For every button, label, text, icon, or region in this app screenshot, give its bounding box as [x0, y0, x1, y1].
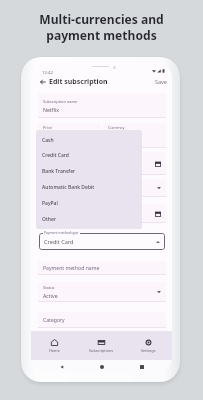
staticText: Edit subscription [49, 77, 108, 87]
staticText: Currency [108, 125, 125, 130]
button[interactable]: Automatic Bank Debit [36, 179, 142, 195]
button[interactable]: Category [38, 312, 166, 328]
button[interactable]: Credit Card [39, 233, 165, 250]
staticText: Multi-currencies and payment methods [39, 11, 164, 43]
button[interactable]: Currency [103, 123, 166, 148]
button[interactable]: PayPal [36, 195, 142, 211]
staticText: Payment method name [43, 265, 100, 272]
staticText: Payment method type [44, 230, 79, 234]
staticText: 12:42 [42, 69, 53, 75]
staticText: Credit Card [44, 238, 74, 246]
button[interactable]: Home [31, 337, 78, 355]
button[interactable]: Subscriptions [78, 337, 125, 355]
button[interactable]: Back [57, 362, 66, 371]
staticText: Status [43, 285, 55, 290]
button[interactable]: Subscription name [38, 93, 166, 118]
staticText: Settings [141, 348, 156, 353]
staticText: PayPal [42, 200, 58, 207]
button[interactable]: Payment method name [38, 261, 166, 275]
other: Expand [157, 290, 161, 294]
staticText: Price [43, 125, 53, 130]
button[interactable]: Pick date [38, 204, 166, 223]
staticText: Credit Card [42, 152, 69, 159]
staticText: Active [43, 292, 58, 299]
button[interactable]: Expand [38, 179, 166, 197]
staticText: Home [49, 348, 60, 353]
staticText: Netflix [43, 106, 59, 113]
button[interactable]: Save [150, 75, 172, 88]
staticText: Subscription name [43, 99, 78, 104]
button[interactable]: Settings [125, 337, 172, 355]
other: Pick date [155, 211, 161, 217]
button[interactable]: Cash [36, 132, 142, 148]
staticText: Category [43, 317, 65, 324]
button[interactable]: Credit Card [36, 147, 142, 163]
button[interactable]: Status [38, 282, 166, 302]
staticText: Automatic Bank Debit [42, 184, 95, 191]
button[interactable]: Pick date [38, 152, 166, 175]
staticText: Save [155, 78, 167, 85]
staticText: Other [42, 216, 56, 223]
other: Expand [157, 186, 161, 190]
button[interactable]: Back [37, 76, 48, 87]
staticText: Subscriptions [89, 348, 114, 353]
button[interactable]: Recent apps [137, 362, 146, 371]
other: Pick date [155, 161, 161, 167]
button[interactable]: Bank Transfer [36, 163, 142, 179]
button[interactable]: Home [97, 362, 106, 371]
button[interactable]: Other [36, 211, 142, 227]
staticText: Cash [42, 137, 54, 144]
button[interactable]: Price [38, 123, 101, 148]
staticText: Bank Transfer [42, 168, 76, 175]
